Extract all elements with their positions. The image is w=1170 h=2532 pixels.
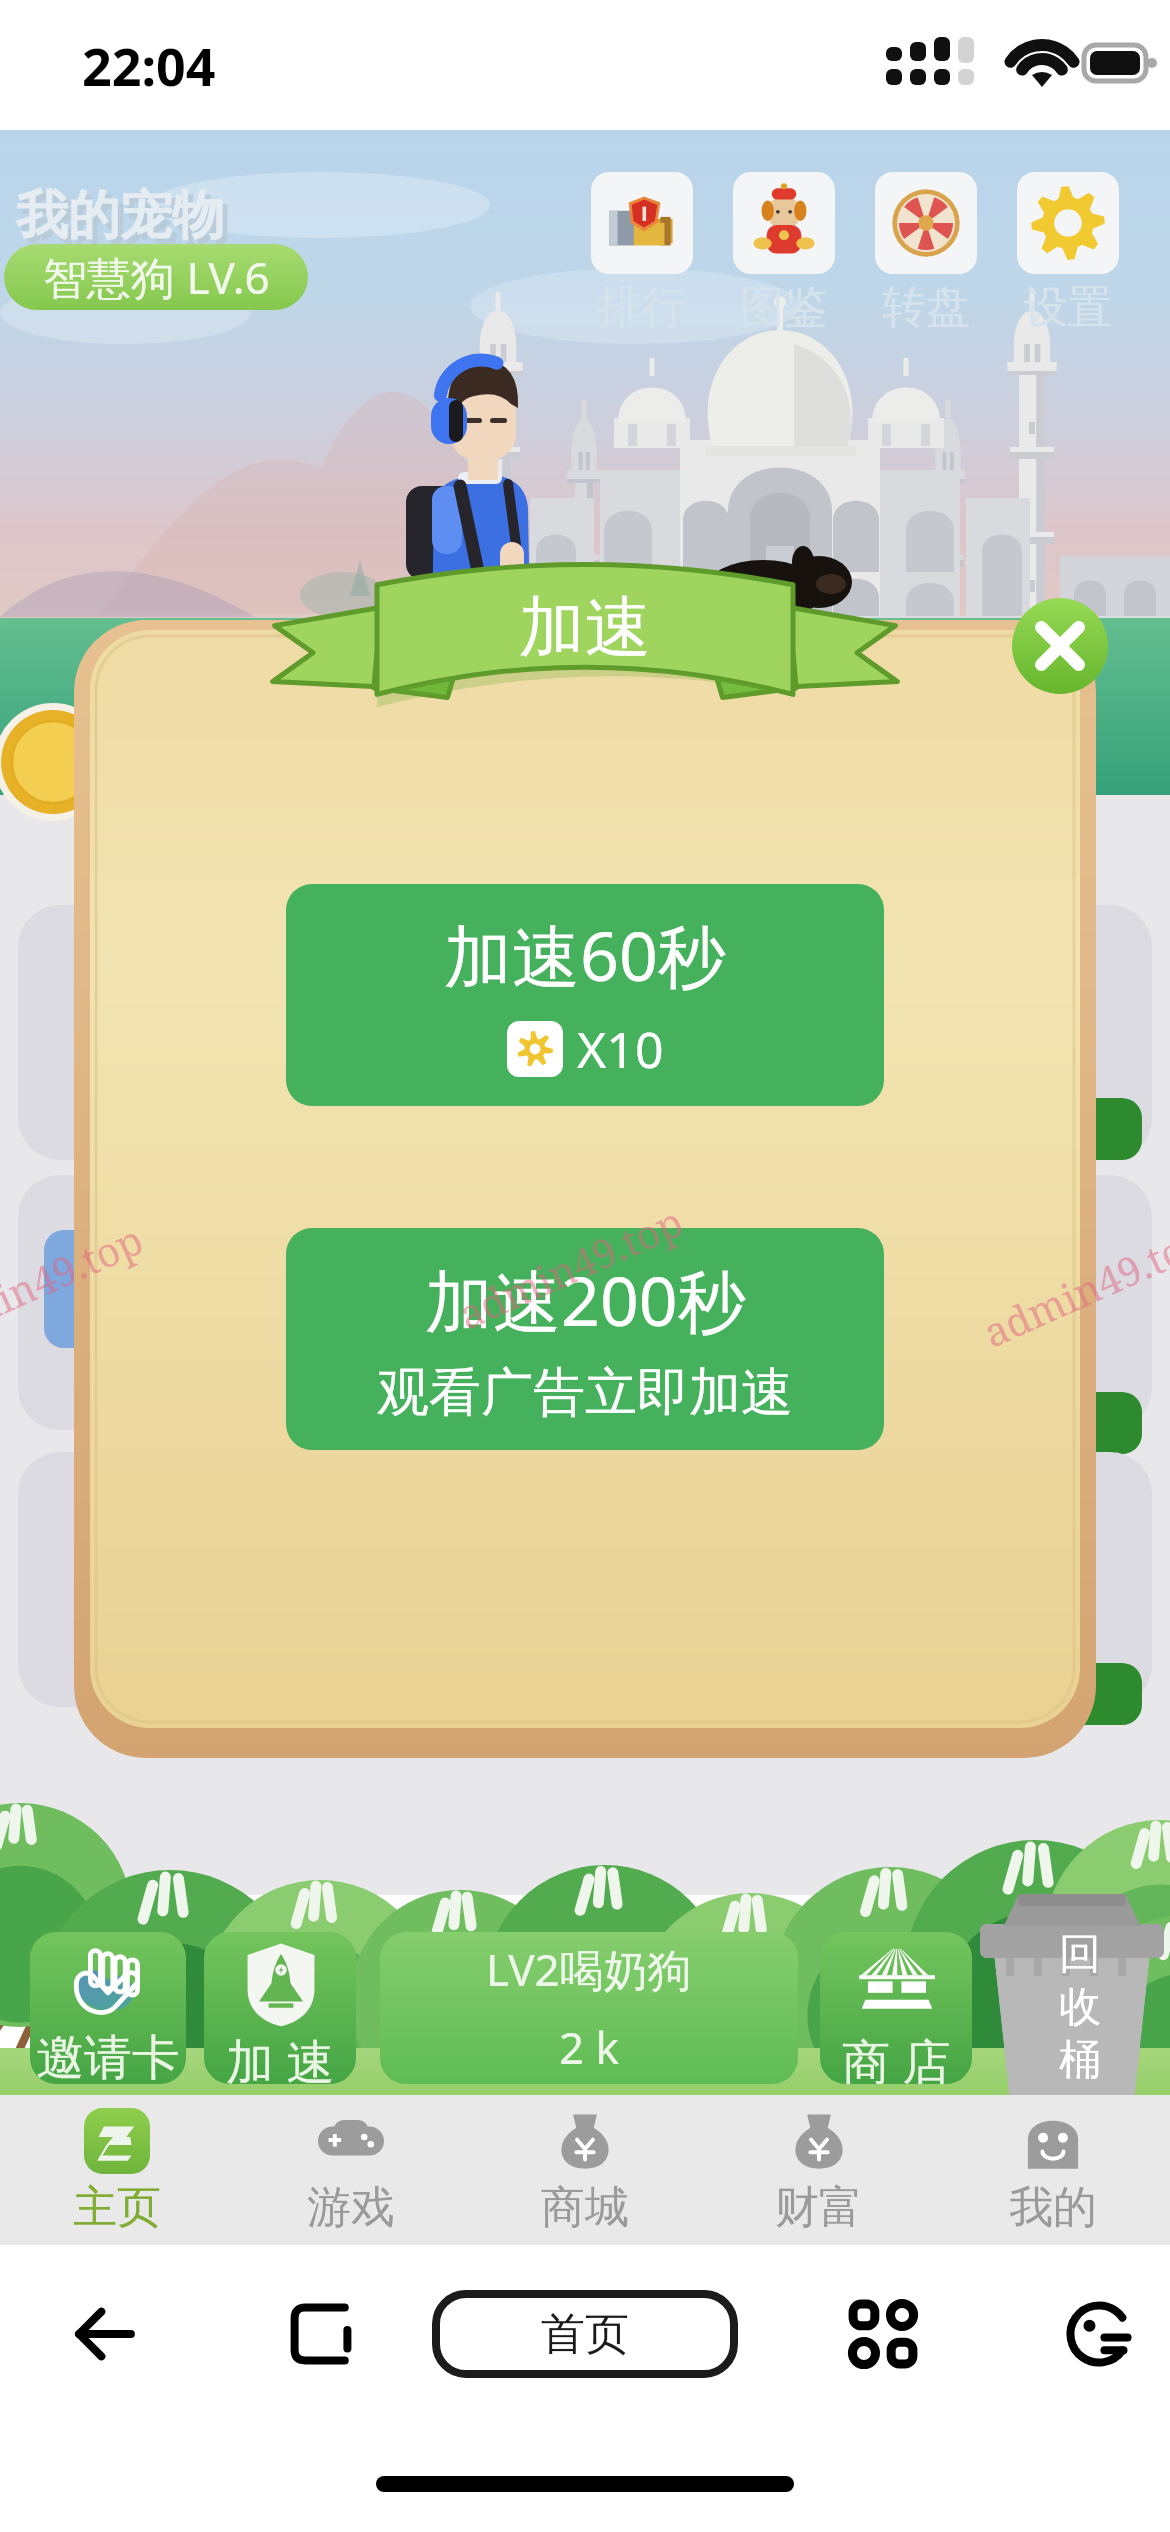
button[interactable]: Apps <box>738 2245 1028 2423</box>
staticText: admin49.top <box>0 1211 151 1358</box>
staticText: 图鉴 <box>740 280 828 335</box>
button[interactable]: 财富 <box>702 2095 936 2247</box>
staticText: admin49.top <box>449 1193 691 1340</box>
button[interactable]: Assistant <box>1028 2245 1170 2423</box>
button[interactable]: Back <box>0 2245 210 2423</box>
staticText: 邀请卡 <box>36 2028 180 2084</box>
button[interactable]: 加速60秒 <box>286 884 884 1106</box>
button[interactable]: Recents <box>210 2245 432 2423</box>
staticText: 回 <box>1059 1928 1101 1981</box>
button[interactable]: Recycle bin <box>1044 1928 1116 2087</box>
staticText: 桶 <box>1059 2034 1101 2087</box>
staticText: 22:04 <box>82 30 216 101</box>
staticText: 观看广告立即加速 <box>377 1360 793 1426</box>
button[interactable]: 排行 <box>591 172 693 335</box>
staticText: 游戏 <box>307 2180 395 2235</box>
staticText: 设置 <box>1024 280 1112 335</box>
staticText: X10 <box>577 1015 664 1083</box>
staticText: 加速200秒 <box>425 1253 746 1346</box>
staticText: 智慧狗 LV.6 <box>43 247 270 307</box>
staticText: 财富 <box>775 2180 863 2235</box>
staticText: 加速60秒 <box>444 908 726 1001</box>
button[interactable]: 首页 <box>432 2290 738 2378</box>
staticText: 2 k <box>559 2017 620 2077</box>
staticText: 商城 <box>541 2180 629 2235</box>
staticText: 加 速 <box>226 2028 335 2084</box>
button[interactable]: 游戏 <box>234 2095 468 2247</box>
button[interactable]: 商城 <box>468 2095 702 2247</box>
button[interactable]: 转盘 <box>875 172 977 335</box>
staticText: admin49.top <box>974 1211 1170 1358</box>
staticText: 加速 <box>519 586 651 669</box>
button[interactable]: 我的 <box>936 2095 1170 2247</box>
button[interactable]: 智慧狗 LV.6 <box>4 244 308 310</box>
staticText: 主页 <box>73 2180 161 2235</box>
button[interactable]: 主页 <box>0 2095 234 2247</box>
staticText: 我的 <box>1009 2180 1097 2235</box>
staticText: 收 <box>1059 1981 1101 2034</box>
staticText: 我的宠物 <box>16 183 224 249</box>
staticText: 首页 <box>541 2307 629 2362</box>
button[interactable]: LV2喝奶狗 <box>380 1932 798 2084</box>
button[interactable]: 加速200秒 <box>286 1228 884 1450</box>
button[interactable]: 图鉴 <box>733 172 835 335</box>
button[interactable]: Close <box>1012 598 1108 694</box>
staticText: 排行 <box>598 280 686 335</box>
button[interactable]: 商 店 <box>820 1932 972 2084</box>
button[interactable]: 加 速 <box>204 1932 356 2084</box>
button[interactable]: 设置 <box>1017 172 1119 335</box>
staticText: 商 店 <box>842 2028 951 2084</box>
staticText: 我的宠物 <box>21 188 229 254</box>
staticText: 转盘 <box>882 280 970 335</box>
button[interactable]: 邀请卡 <box>30 1932 186 2084</box>
staticText: LV2喝奶狗 <box>486 1939 692 1999</box>
